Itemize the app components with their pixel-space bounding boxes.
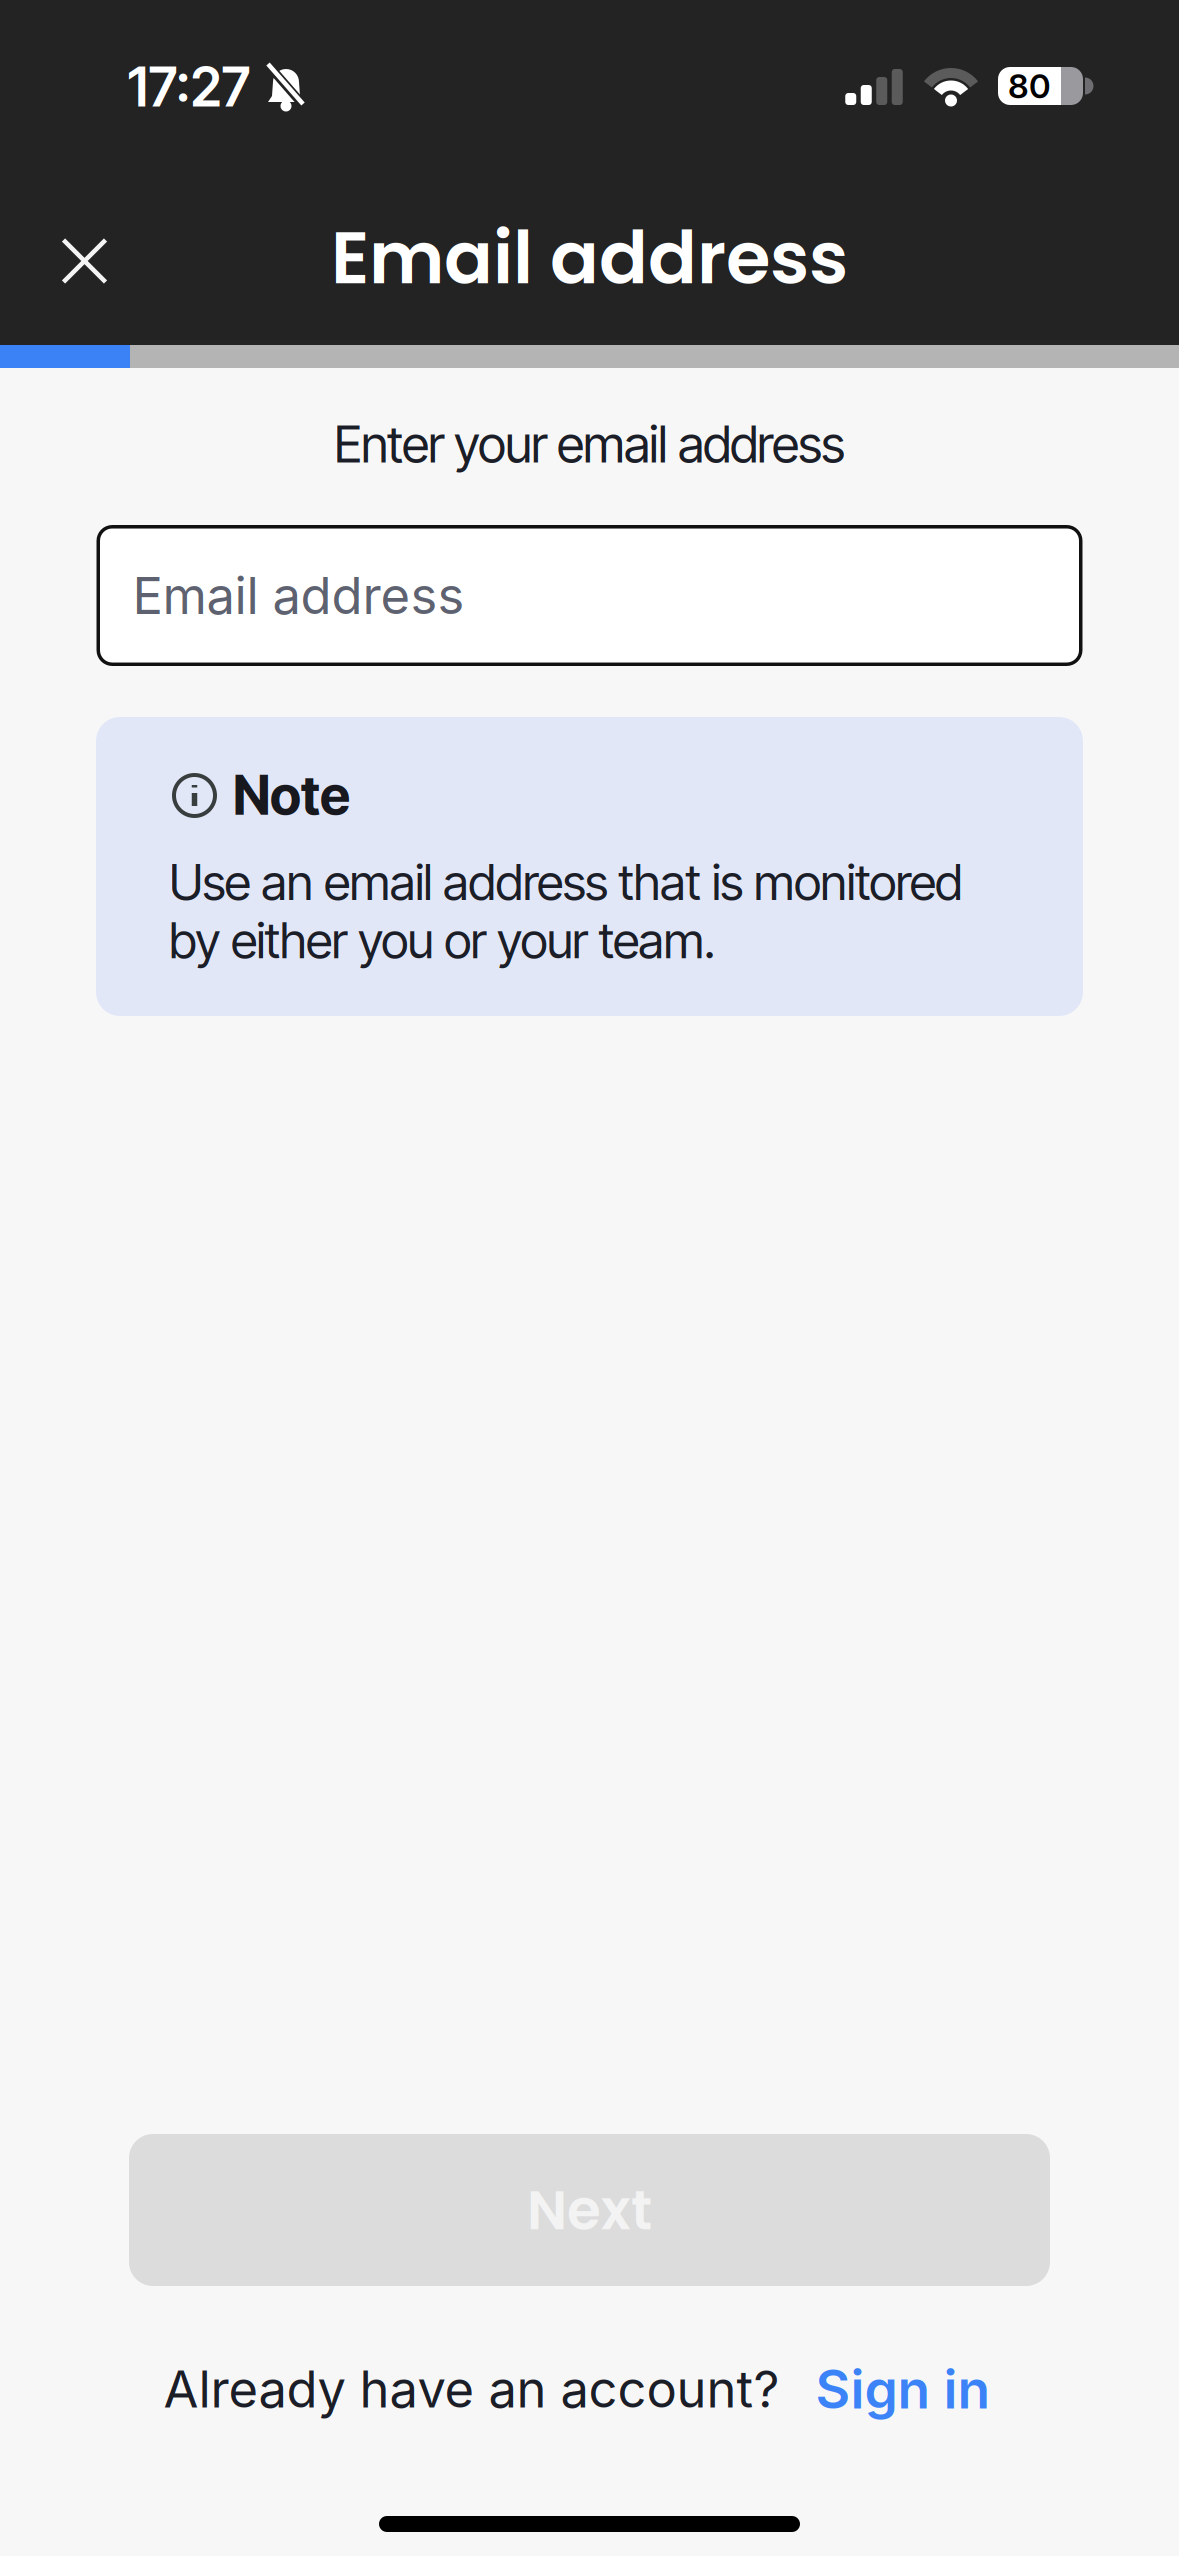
button[interactable]: Sign in — [815, 2357, 990, 2420]
staticText: Email address — [331, 208, 848, 308]
button[interactable]: Next — [129, 2134, 1050, 2286]
button[interactable]: Email address — [96, 525, 1082, 666]
staticText: Use an email address that is monitored b… — [169, 853, 963, 969]
staticText: 17:27 — [127, 55, 250, 118]
staticText: Note — [233, 764, 350, 827]
staticText: Already have an account? — [163, 2359, 779, 2419]
staticText: 80 — [1008, 66, 1051, 106]
staticText: Email address — [132, 566, 464, 625]
button[interactable] — [42, 219, 126, 303]
staticText: Enter your email address — [334, 414, 845, 474]
staticText: Sign in — [815, 2357, 990, 2420]
staticText: Next — [527, 2172, 652, 2248]
